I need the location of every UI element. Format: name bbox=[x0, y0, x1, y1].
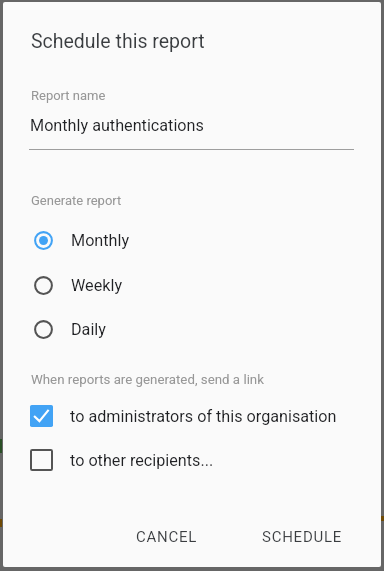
button[interactable]: Monthly bbox=[3, 218, 381, 262]
staticText: to administrators of this organisation bbox=[70, 407, 337, 426]
button[interactable]: SCHEDULE bbox=[246, 518, 359, 556]
button[interactable]: to other recipients... bbox=[3, 438, 381, 482]
button[interactable]: Weekly bbox=[3, 263, 381, 307]
staticText: Daily bbox=[71, 320, 106, 339]
staticText: When reports are generated, send a link bbox=[31, 372, 264, 388]
staticText: Report name bbox=[31, 88, 106, 103]
staticText: Schedule this report bbox=[31, 30, 205, 53]
staticText: Generate report bbox=[31, 193, 122, 208]
button[interactable]: to administrators of this organisation bbox=[3, 394, 381, 438]
staticText: Weekly bbox=[71, 276, 123, 295]
staticText: CANCEL bbox=[136, 528, 198, 546]
button[interactable]: CANCEL bbox=[120, 518, 214, 556]
staticText: Monthly authentications bbox=[30, 116, 204, 135]
staticText: SCHEDULE bbox=[262, 528, 343, 546]
staticText: to other recipients... bbox=[70, 451, 214, 470]
button[interactable]: Daily bbox=[3, 307, 381, 351]
staticText: Monthly bbox=[71, 231, 130, 250]
